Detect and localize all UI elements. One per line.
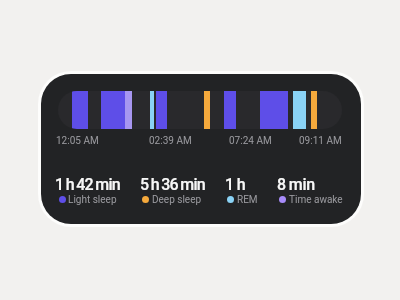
staticText: 07:24 AM <box>229 135 272 147</box>
staticText: 8 min <box>277 175 315 194</box>
staticText: REM <box>237 194 258 206</box>
staticText: 12:05 AM <box>56 135 99 147</box>
staticText: Time awake <box>289 194 343 206</box>
button[interactable]: 1 h <box>225 175 307 205</box>
button[interactable]: 5 h 36 min <box>140 175 222 205</box>
button[interactable]: 1 h 42 min <box>55 175 137 205</box>
button[interactable]: 8 min <box>277 175 359 205</box>
staticText: 1 h 42 min <box>55 175 120 194</box>
staticText: Deep sleep <box>152 194 202 206</box>
staticText: 1 h <box>225 175 246 194</box>
staticText: 02:39 AM <box>149 135 192 147</box>
staticText: 09:11 AM <box>299 135 342 147</box>
staticText: Light sleep <box>68 194 117 206</box>
staticText: 5 h 36 min <box>140 175 205 194</box>
button[interactable]: 12:05 AM <box>41 74 361 224</box>
